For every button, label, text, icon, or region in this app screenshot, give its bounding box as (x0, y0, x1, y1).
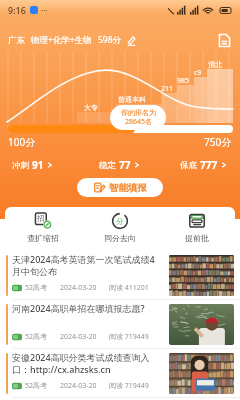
staticText: 77 (119, 158, 131, 172)
staticText: 智能填报 (109, 182, 147, 194)
button[interactable]: 河南2024高职单招在哪填报志愿? (0, 300, 240, 349)
staticText: 大专 (84, 103, 98, 112)
staticText: 9:16 (8, 4, 26, 16)
staticText: 阅读 719449 (109, 381, 149, 391)
staticText: 提前批 (185, 233, 209, 243)
button[interactable]: 招 (5, 207, 81, 248)
button[interactable]: 天津2024高考英语第一次笔试成绩4月中旬公布 (0, 251, 240, 300)
staticText: 广东 (8, 35, 25, 46)
staticText: 2024-03-20 (60, 332, 97, 342)
staticText: 分 (116, 217, 124, 226)
staticText: 清北 (208, 60, 222, 69)
staticText: 天津2024高考英语第一次笔试成绩4月中旬公布 (12, 253, 163, 278)
staticText: 2024-03-20 (60, 381, 97, 391)
staticText: c9 (194, 68, 202, 78)
button[interactable]: 冲刺 (12, 158, 54, 172)
staticText: 598分 (98, 34, 122, 46)
staticText: 28645名 (125, 117, 153, 127)
staticText: 河南2024高职单招在哪填报志愿? (12, 302, 145, 314)
staticText: 52高考 (25, 332, 48, 342)
button[interactable]: 广东 (8, 34, 137, 46)
button[interactable]: 保底 (180, 158, 228, 172)
staticText: 保底 (180, 160, 197, 171)
button[interactable]: 稳定 (99, 158, 141, 172)
staticText: 冲刺 (12, 160, 29, 171)
staticText: 91 (32, 158, 44, 172)
staticText: 你的排名为 (121, 108, 156, 117)
staticText: 52高考 (25, 283, 48, 293)
staticText: 777 (200, 158, 218, 172)
staticText: 阅读 719449 (109, 332, 149, 342)
staticText: 招 (37, 214, 45, 223)
staticText: ··· (41, 5, 48, 16)
staticText: 查扩缩招 (27, 233, 59, 243)
button[interactable]: My report (217, 33, 232, 48)
button[interactable]: 分 (81, 207, 158, 248)
staticText: 985 (177, 76, 190, 86)
other: Edit score (126, 35, 137, 46)
staticText: 211 (161, 84, 174, 94)
staticText: 100分 (8, 135, 36, 149)
staticText: 普通本科 (118, 95, 146, 104)
staticText: 750分 (204, 135, 232, 149)
staticText: 安徽2024高职分类考试成绩查询入口：http://cx.ahzsks.cn (12, 351, 163, 376)
staticText: 阅读 411201 (109, 283, 149, 293)
staticText: 物理+化学+生物 (31, 34, 92, 46)
staticText: 2024-03-20 (60, 283, 97, 293)
staticText: 稳定 (99, 160, 116, 171)
staticText: 同分去向 (104, 233, 136, 243)
button[interactable]: 安徽2024高职分类考试成绩查询入口：http://cx.ahzsks.cn (0, 349, 240, 398)
button[interactable]: 智能填报 (77, 178, 163, 197)
staticText: 52高考 (25, 381, 48, 391)
button[interactable]: 提前批 (158, 207, 235, 248)
